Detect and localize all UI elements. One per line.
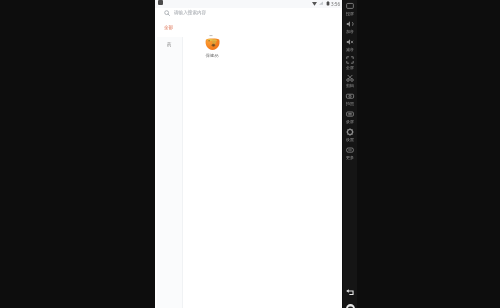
button[interactable]: 全屏 [343, 56, 357, 74]
staticText: 拍照 [346, 101, 354, 106]
button[interactable]: Back [346, 288, 354, 296]
staticText: 更多 [346, 155, 354, 160]
button[interactable]: 保健品 [197, 37, 227, 59]
button[interactable]: 请输入搜索内容 [155, 7, 342, 19]
button[interactable]: 剪辑 [343, 74, 357, 92]
button[interactable]: 全部 [162, 24, 176, 32]
button[interactable]: 拍照 [343, 92, 357, 110]
staticText: 全屏 [346, 65, 354, 70]
button[interactable]: 更多 [343, 146, 357, 164]
staticText: 加音 [346, 29, 354, 34]
button[interactable]: 设置 [343, 128, 357, 146]
staticText: 请输入搜索内容 [174, 10, 207, 16]
button[interactable]: 药 [157, 37, 182, 53]
button[interactable]: 加音 [343, 20, 357, 38]
staticText: 全部 [164, 25, 174, 31]
button[interactable]: 投屏 [343, 2, 357, 20]
staticText: 减音 [346, 47, 354, 52]
staticText: 3:56 [331, 1, 341, 7]
staticText: 录屏 [346, 119, 354, 124]
staticText: 设置 [346, 137, 354, 142]
staticText: 保健品 [205, 53, 219, 59]
button[interactable]: 减音 [343, 38, 357, 56]
staticText: 剪辑 [346, 83, 354, 88]
staticText: 投屏 [346, 11, 354, 16]
button[interactable]: 录屏 [343, 110, 357, 128]
staticText: 药 [167, 42, 172, 48]
